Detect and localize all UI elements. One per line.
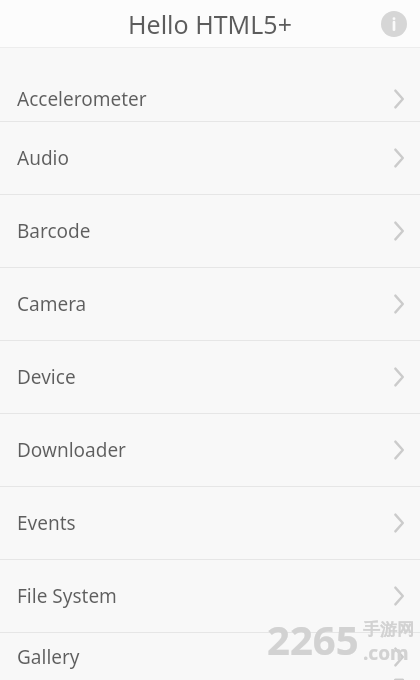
button[interactable]: Barcode xyxy=(0,195,420,267)
staticText: 2265 xyxy=(267,612,359,666)
button[interactable]: Camera xyxy=(0,268,420,340)
staticText: .com xyxy=(363,640,409,666)
button[interactable]: Accelerometer xyxy=(0,77,420,121)
staticText: Audio xyxy=(17,145,69,171)
button[interactable]: Events xyxy=(0,487,420,559)
staticText: Hello HTML5+ xyxy=(128,7,292,41)
staticText: Camera xyxy=(17,291,87,317)
button[interactable]: Gallery xyxy=(0,633,420,680)
staticText: Downloader xyxy=(17,437,126,463)
staticText: Accelerometer xyxy=(17,86,147,112)
button[interactable]: File System xyxy=(0,560,420,632)
staticText: File System xyxy=(17,583,117,609)
staticText: 手游网 xyxy=(363,619,414,640)
button[interactable]: About xyxy=(374,4,414,44)
button[interactable]: Downloader xyxy=(0,414,420,486)
staticText: Device xyxy=(17,364,76,390)
button[interactable]: Device xyxy=(0,341,420,413)
staticText: Events xyxy=(17,510,76,536)
staticText: Gallery xyxy=(17,644,80,670)
staticText: Barcode xyxy=(17,218,91,244)
button[interactable]: Audio xyxy=(0,122,420,194)
